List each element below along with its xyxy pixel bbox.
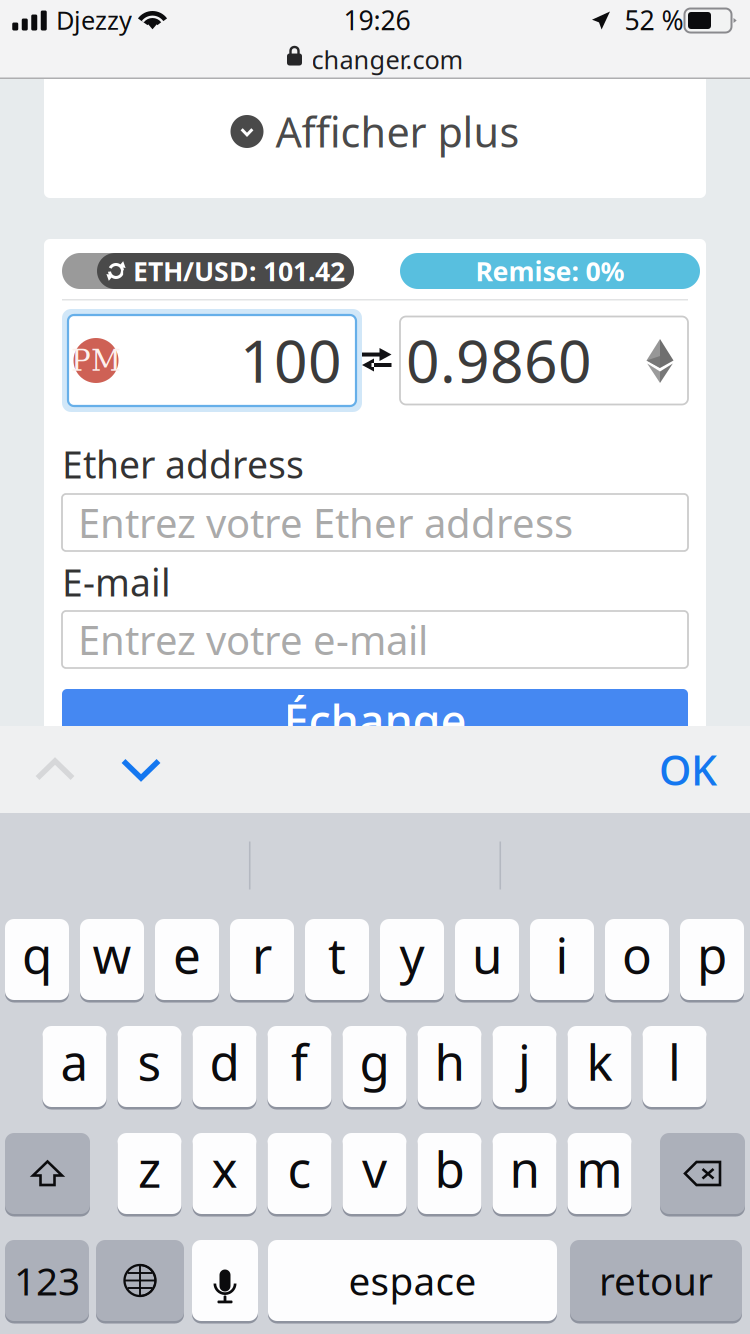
staticText: s [137,1029,161,1094]
button[interactable]: Entrez votre Ether address [62,494,688,551]
staticText: d [209,1029,239,1094]
staticText: l [668,1029,681,1094]
button[interactable]: retour [570,1238,742,1322]
staticText: Échange [283,690,466,750]
staticText: g [359,1029,389,1094]
button[interactable]: i [530,917,594,1001]
button[interactable]: x [192,1131,256,1215]
staticText: j [518,1029,531,1094]
button[interactable]: OK [617,726,717,813]
staticText: Entrez votre e-mail [78,613,428,666]
button[interactable]: espace [268,1238,557,1322]
button[interactable]: z [117,1131,181,1215]
staticText: y [399,922,424,987]
staticText: retour [599,1255,713,1306]
staticText: e [173,922,201,987]
staticText: Entrez votre Ether address [78,496,573,549]
staticText: f [291,1029,308,1094]
button[interactable]: g [342,1024,406,1108]
button[interactable]: n [492,1131,556,1215]
staticText: i [555,922,568,987]
staticText: Remise: 0% [475,253,624,289]
staticText: w [92,922,131,987]
button[interactable]: Entrez votre e-mail [62,611,688,668]
button[interactable]: changer.com [0,40,750,78]
button[interactable]: b [417,1131,481,1215]
button[interactable]: m [567,1131,631,1215]
staticText: h [434,1029,464,1094]
staticText: 52 % [624,2,683,38]
button[interactable]: h [417,1024,481,1108]
staticText: 0.9860 [406,321,592,399]
button[interactable]: l [642,1024,706,1108]
staticText: c [287,1136,311,1201]
staticText: 100 [240,321,342,399]
button[interactable]: p [680,917,744,1001]
staticText: espace [348,1255,476,1306]
button[interactable]: w [80,917,144,1001]
staticText: changer.com [311,43,463,76]
button[interactable]: o [605,917,669,1001]
button[interactable]: Afficher plus [44,65,706,198]
button[interactable]: Previous field [12,726,98,813]
staticText: Afficher plus [275,104,519,159]
staticText: u [472,922,502,987]
staticText: q [22,922,52,987]
staticText: o [622,922,652,987]
button[interactable]: t [305,917,369,1001]
button[interactable]: y [380,917,444,1001]
button[interactable]: u [455,917,519,1001]
staticText: ETH/USD: 101.42 [133,253,345,289]
button[interactable]: c [267,1131,331,1215]
button[interactable]: 123 [5,1238,89,1322]
button[interactable]: r [230,917,294,1001]
button[interactable]: v [342,1131,406,1215]
staticText: r [252,922,272,987]
button[interactable]: a [42,1024,106,1108]
staticText: Ether address [62,439,304,489]
button[interactable]: f [267,1024,331,1108]
button[interactable]: Next field [98,726,184,813]
staticText: z [138,1136,161,1201]
button[interactable]: Next keyboard [96,1238,184,1322]
staticText: PM [71,343,121,377]
staticText: OK [659,742,717,797]
button[interactable]: d [192,1024,256,1108]
button[interactable]: ETH/USD: 101.42 [62,253,354,289]
button[interactable]: e [155,917,219,1001]
button[interactable]: Shift [5,1131,90,1215]
button[interactable]: Remise: 0% [400,253,700,289]
button[interactable]: Dictate [192,1238,258,1322]
staticText: b [434,1136,464,1201]
staticText: Djezzy [56,3,132,37]
staticText: k [586,1029,612,1094]
staticText: E-mail [62,557,171,607]
staticText: n [509,1136,539,1201]
staticText: 123 [14,1255,80,1306]
button[interactable]: Delete [660,1131,745,1215]
staticText: a [60,1029,88,1094]
staticText: t [328,922,346,987]
staticText: x [211,1136,237,1201]
staticText: p [697,922,727,987]
staticText: v [362,1136,387,1201]
button[interactable]: j [492,1024,556,1108]
staticText: m [576,1136,622,1201]
button[interactable]: k [567,1024,631,1108]
button[interactable]: s [117,1024,181,1108]
button[interactable]: q [5,917,69,1001]
staticText: 19:26 [343,2,410,38]
button[interactable]: Échange [62,689,688,751]
